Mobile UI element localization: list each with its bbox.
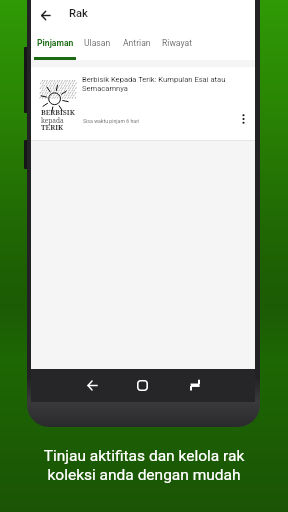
button[interactable]: Home: [126, 369, 158, 401]
staticText: kepada: [41, 116, 64, 125]
staticText: BERBISIK: [41, 108, 75, 118]
button[interactable]: Riwayat: [157, 30, 197, 60]
button[interactable]: Back: [75, 369, 109, 401]
button[interactable]: Ulasan: [77, 30, 117, 60]
staticText: TERIK: [41, 123, 64, 133]
button[interactable]: Recent apps: [179, 369, 211, 401]
staticText: Ulasan: [84, 38, 111, 48]
staticText: Sisa waktu pinjam 6 hari: [83, 118, 140, 124]
button[interactable]: Back: [33, 2, 59, 28]
staticText: Rak: [69, 7, 88, 20]
staticText: Pinjaman: [37, 38, 74, 48]
staticText: Tinjau aktifitas dan kelola rak koleksi …: [0, 447, 288, 483]
button[interactable]: Pinjaman: [34, 30, 76, 60]
button[interactable]: Antrian: [117, 30, 157, 60]
staticText: Berbisik Kepada Terik: Kumpulan Esai ata…: [82, 75, 230, 93]
button[interactable]: BERBISIK: [31, 67, 255, 140]
button[interactable]: More options: [234, 110, 252, 128]
staticText: Riwayat: [162, 38, 192, 48]
staticText: Antrian: [123, 38, 151, 48]
